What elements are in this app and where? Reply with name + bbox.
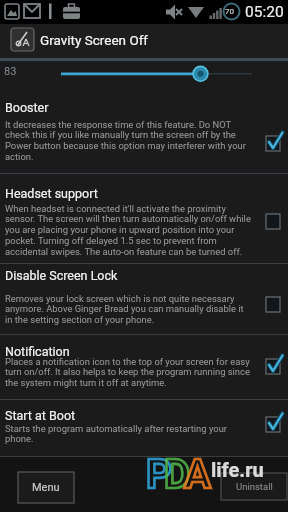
button[interactable] [266, 288, 288, 314]
staticText: 83 [4, 65, 17, 78]
staticText: Removes your lock screen which is not qu… [5, 293, 265, 326]
button[interactable] [266, 350, 288, 376]
button[interactable] [0, 263, 288, 334]
staticText: P [146, 451, 172, 498]
button[interactable]: Headset support [5, 186, 98, 201]
button[interactable] [0, 334, 288, 399]
staticText: Uninstall [236, 481, 273, 492]
button[interactable]: Notification [5, 344, 70, 359]
button[interactable] [266, 408, 288, 434]
button[interactable]: Gravity Screen Off [0, 24, 288, 58]
staticText: D [164, 451, 191, 498]
button[interactable] [0, 61, 288, 87]
staticText: Starts the program automatically after r… [5, 423, 265, 445]
staticText: life.ru [211, 458, 264, 481]
button[interactable]: Start at Boot [5, 408, 76, 423]
staticText: When headset is connected it'll activate… [5, 203, 265, 258]
staticText: Places a notification icon to the top of… [5, 356, 265, 389]
staticText: Gravity Screen Off [40, 32, 149, 48]
button[interactable] [266, 127, 288, 153]
button[interactable] [0, 90, 288, 173]
staticText: A [184, 451, 211, 498]
button[interactable]: Disable Screen Lock [5, 268, 118, 283]
button[interactable] [0, 399, 288, 456]
button[interactable] [0, 173, 288, 263]
button[interactable]: Booster [5, 100, 49, 115]
staticText: 70 [225, 7, 234, 16]
staticText: 05:20 [245, 3, 284, 21]
button[interactable]: Uninstall [221, 473, 287, 500]
staticText: It decreases the response time of this f… [5, 119, 265, 163]
staticText: Menu [32, 481, 60, 494]
button[interactable]: Menu [18, 472, 74, 503]
button[interactable] [266, 205, 288, 231]
